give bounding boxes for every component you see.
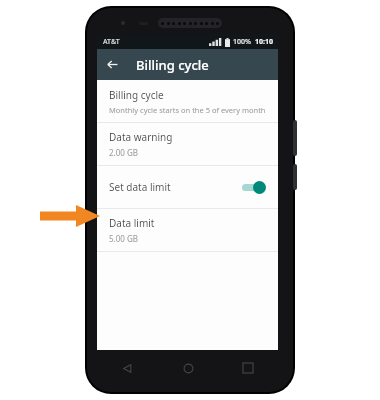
button[interactable]: Data warning: [97, 123, 278, 165]
button[interactable]: Recents: [218, 352, 278, 384]
staticText: Billing cycle: [109, 88, 164, 102]
button[interactable]: Back: [97, 49, 127, 80]
staticText: Data warning: [109, 130, 173, 144]
staticText: AT&T: [103, 37, 120, 47]
staticText: 10:10: [255, 37, 273, 47]
button[interactable]: Home: [158, 352, 218, 384]
staticText: Set data limit: [109, 180, 240, 194]
staticText: 100%: [233, 37, 251, 47]
button[interactable]: Billing cycle: [97, 80, 278, 122]
staticText: Billing cycle: [136, 56, 209, 74]
button[interactable]: Set data limit: [97, 166, 278, 208]
button[interactable]: Back: [97, 352, 158, 384]
staticText: Data limit: [109, 216, 155, 230]
staticText: 5.00 GB: [109, 233, 138, 244]
staticText: Monthly cycle starts on the 5 of every m…: [109, 105, 266, 115]
button[interactable]: Data limit: [97, 209, 278, 251]
staticText: 2.00 GB: [109, 147, 138, 158]
